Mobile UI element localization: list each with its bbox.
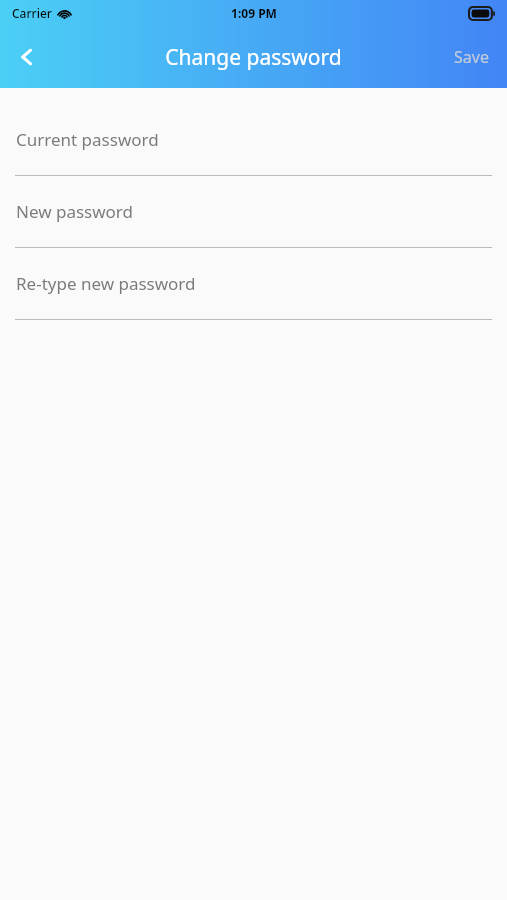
staticText: 1:09 PM — [231, 5, 277, 21]
button[interactable]: Re-type new password — [0, 248, 507, 320]
staticText: Save — [454, 46, 489, 68]
button[interactable]: New password — [0, 176, 507, 248]
button[interactable]: Current password — [0, 104, 507, 176]
button[interactable]: Back — [0, 29, 56, 85]
staticText: Carrier — [12, 5, 52, 21]
staticText: Change password — [165, 43, 342, 72]
staticText: New password — [16, 200, 134, 223]
button[interactable]: Save — [436, 29, 507, 85]
staticText: Re-type new password — [16, 272, 196, 295]
staticText: Current password — [16, 128, 159, 151]
